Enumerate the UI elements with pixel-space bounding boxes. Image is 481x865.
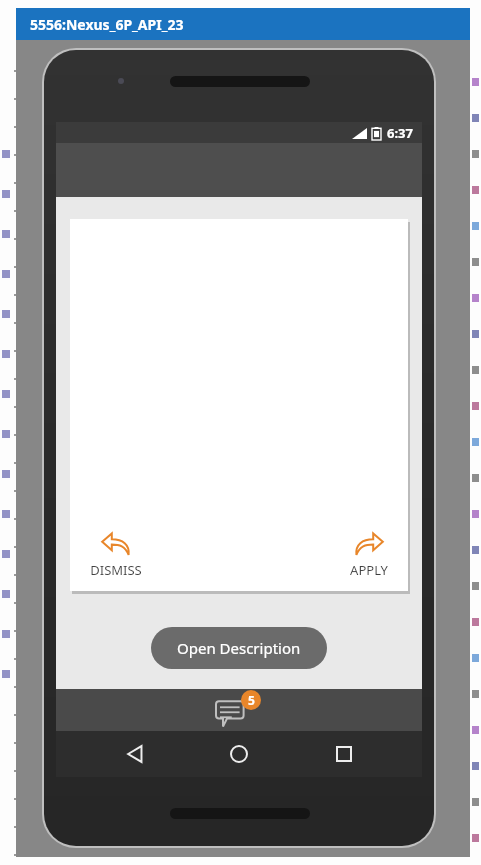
staticText: 6:37 xyxy=(387,124,413,142)
button[interactable]: Back xyxy=(109,731,161,777)
button[interactable]: DISMISS xyxy=(86,528,146,583)
button[interactable]: APPLY xyxy=(346,528,392,583)
button[interactable]: 5556:Nexus_6P_API_23 xyxy=(16,8,470,40)
staticText: 5 xyxy=(248,692,255,708)
staticText: Open Description xyxy=(177,638,301,658)
staticText: APPLY xyxy=(350,561,388,579)
button[interactable]: Comments, 5 unread xyxy=(216,692,262,728)
staticText: 5556:Nexus_6P_API_23 xyxy=(30,15,184,34)
button[interactable]: Open Description xyxy=(151,627,327,669)
button[interactable]: Recent apps xyxy=(318,731,370,777)
staticText: DISMISS xyxy=(90,561,142,579)
button[interactable]: Home xyxy=(213,731,265,777)
